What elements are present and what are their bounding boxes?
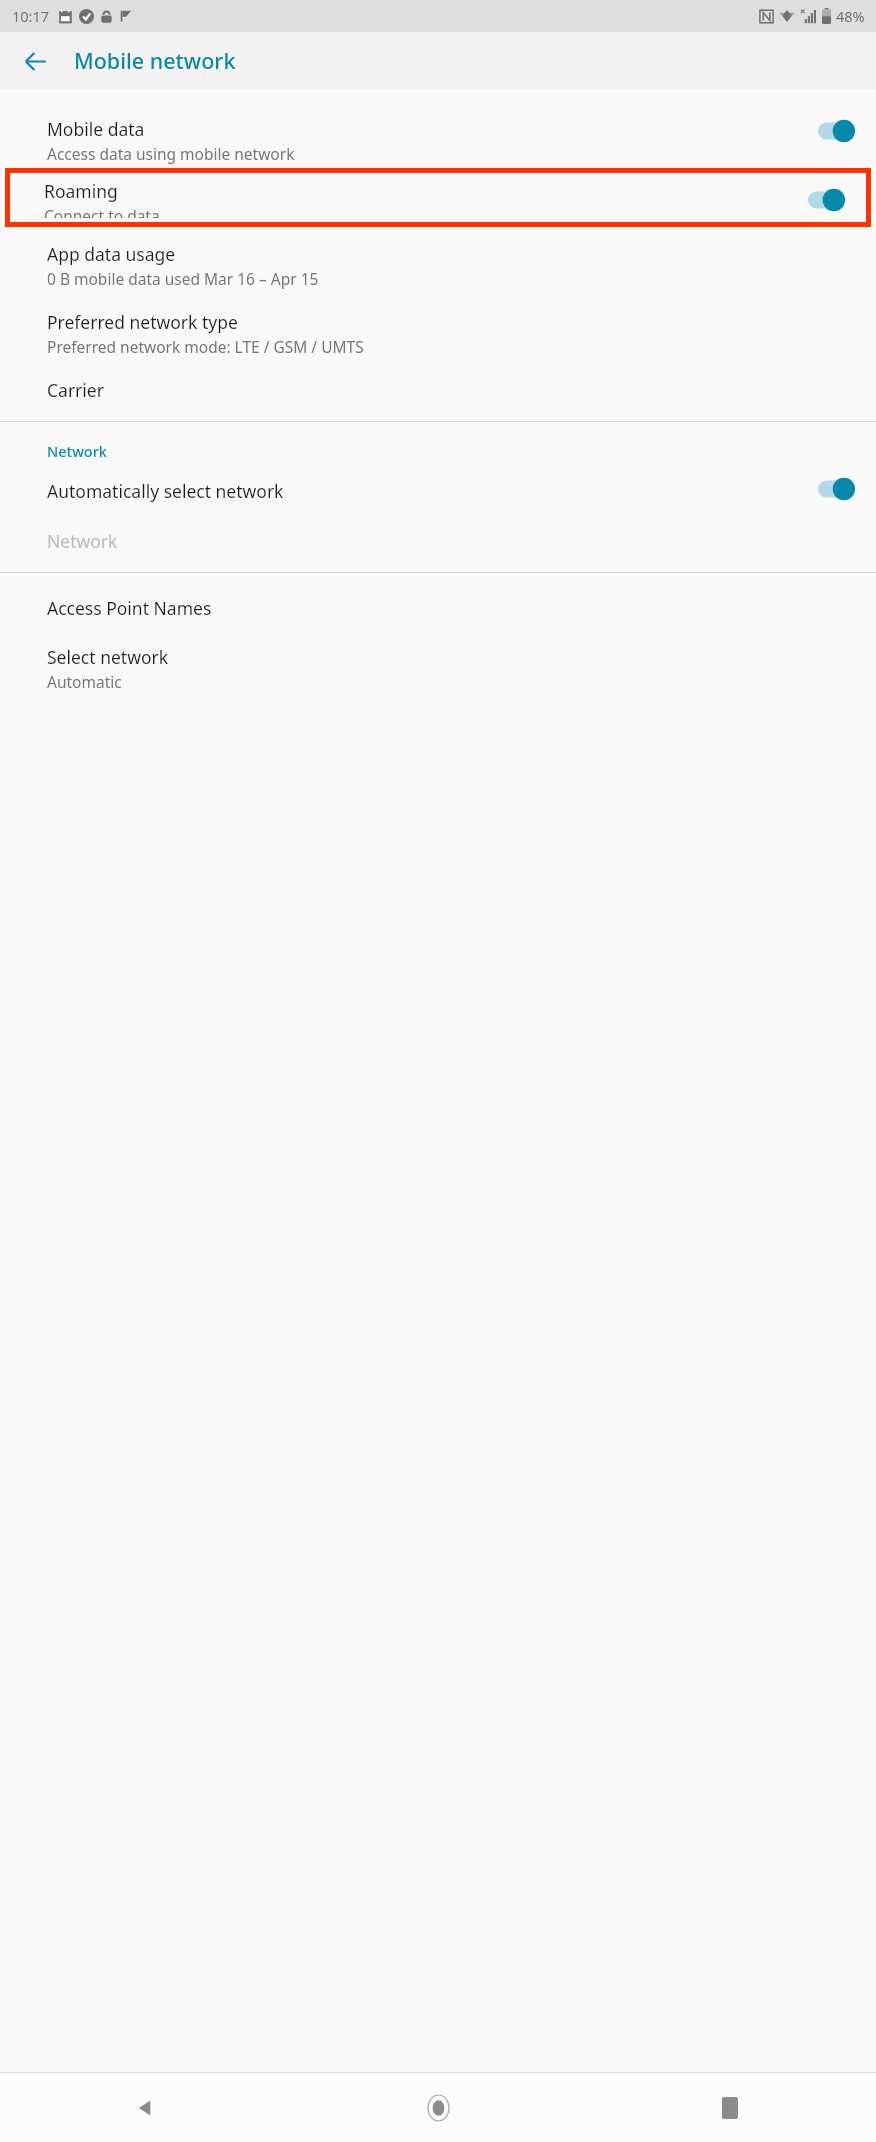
staticText: Preferred network type [47,310,238,334]
staticText: 10:17 [12,6,50,26]
button[interactable]: Back [0,2073,292,2142]
staticText: Mobile data [47,117,145,141]
button[interactable]: Access Point Names [0,589,876,624]
staticText: Automatic [47,671,122,692]
button[interactable]: Mobile data [0,104,876,168]
button[interactable]: Roaming toggle [808,187,852,213]
staticText: Preferred network mode: LTE / GSM / UMTS [47,336,364,357]
staticText: 48% [836,6,865,26]
staticText: Select network [47,645,169,669]
button[interactable]: Home [292,2073,584,2142]
staticText: Network [47,529,118,553]
button[interactable]: Roaming [10,173,866,222]
button[interactable]: Select network [0,638,876,696]
staticText: Mobile network [74,46,236,75]
staticText: App data usage [47,242,176,266]
button[interactable]: Carrier [0,370,876,406]
staticText: Automatically select network [47,479,284,503]
button[interactable]: Recent apps [584,2073,876,2142]
staticText: Access data using mobile network [47,143,295,164]
staticText: 0 B mobile data used Mar 16 – Apr 15 [47,268,319,289]
button[interactable]: Automatically select network [0,473,876,507]
staticText: Access Point Names [47,596,212,620]
button[interactable]: Mobile data toggle [818,118,862,144]
button[interactable]: Back [13,39,57,83]
staticText: Connect to data services when roaming [44,205,162,218]
staticText: Network [47,441,107,461]
button[interactable]: App data usage [0,234,876,293]
button[interactable]: Network [0,523,876,557]
staticText: Carrier [47,378,104,402]
staticText: Roaming [44,179,118,203]
button[interactable]: Automatically select network toggle [818,476,862,502]
button[interactable]: Preferred network type [0,302,876,361]
